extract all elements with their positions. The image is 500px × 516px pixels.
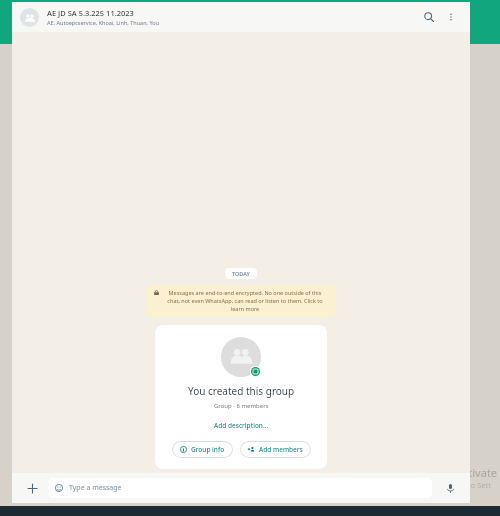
staticText: Messages are end-to-end encrypted. No on… (162, 289, 328, 313)
button[interactable]: Attach (22, 478, 42, 498)
button[interactable]: More options (440, 6, 462, 28)
staticText: Activate (456, 465, 498, 480)
button[interactable]: Group info (172, 441, 233, 458)
staticText: TODAY (232, 270, 250, 277)
staticText: Type a message (69, 483, 122, 493)
staticText: AE JD SA 5.3.225 11.2023 (47, 8, 134, 18)
staticText: Group info (191, 445, 225, 454)
button[interactable]: AE JD SA 5.3.225 11.2023 (12, 2, 470, 32)
button[interactable]: Type a message (48, 478, 432, 498)
staticText: Go to Sett (456, 480, 491, 490)
button[interactable]: Search (418, 6, 440, 28)
button[interactable]: Voice message (440, 478, 460, 498)
button[interactable]: Messages are end-to-end encrypted. No on… (146, 285, 336, 317)
staticText: Group · 6 members (214, 402, 269, 410)
button[interactable]: Add description... (212, 419, 271, 432)
button[interactable]: Add members (240, 441, 311, 458)
staticText: You created this group (188, 384, 295, 398)
staticText: Add members (259, 445, 303, 454)
staticText: Add description... (214, 421, 269, 430)
staticText: AE, Autoepcservice, Khoai, Linh, Thuan, … (47, 19, 160, 26)
